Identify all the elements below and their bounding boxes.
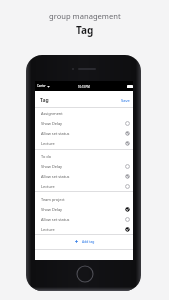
staticText: Show Delay	[41, 164, 63, 169]
staticText: Add tag	[82, 239, 95, 244]
staticText: Assignment	[41, 111, 63, 116]
staticText: Show Delay	[41, 121, 63, 126]
staticText: To do	[41, 154, 52, 159]
staticText: Carrier	[37, 84, 46, 88]
staticText: Allow set status	[41, 217, 70, 222]
button[interactable]: Allow set status	[35, 128, 133, 138]
button[interactable]: Allow set status	[35, 171, 133, 181]
button[interactable]: Lecture	[35, 138, 133, 148]
button[interactable]: Lecture	[35, 224, 133, 234]
staticText: group management	[49, 11, 121, 21]
staticText: Lecture	[41, 141, 55, 146]
staticText: Tag	[76, 23, 94, 37]
staticText: Tag	[40, 97, 49, 104]
staticText: Save	[121, 98, 130, 103]
button[interactable]: Show Delay	[35, 118, 133, 128]
button[interactable]: Allow set status	[35, 214, 133, 224]
staticText: Team project	[41, 197, 65, 202]
button[interactable]: Add tag	[36, 234, 134, 248]
staticText: Lecture	[41, 227, 55, 232]
staticText: Lecture	[41, 184, 55, 189]
button[interactable]: Show Delay	[35, 161, 133, 171]
button[interactable]: Lecture	[35, 181, 133, 191]
staticText: Allow set status	[41, 131, 70, 136]
staticText: Allow set status	[41, 174, 70, 179]
staticText: 10:13 PM	[78, 85, 90, 89]
button[interactable]: Save	[121, 98, 130, 103]
staticText: Show Delay	[41, 207, 63, 212]
button[interactable]: Show Delay	[35, 204, 133, 214]
